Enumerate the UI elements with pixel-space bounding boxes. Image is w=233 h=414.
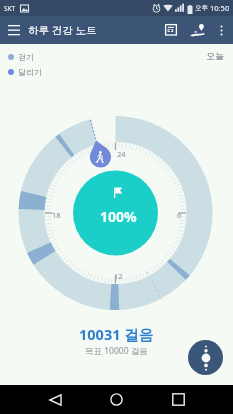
button[interactable]: Actions — [188, 340, 223, 375]
button[interactable]: 오늘 — [206, 50, 224, 61]
staticText: 10031 걸음 — [79, 324, 154, 344]
button[interactable]: 달리기 — [8, 67, 42, 77]
staticText: 걷기 — [18, 52, 34, 62]
staticText: 100% — [100, 207, 137, 226]
button[interactable]: Calendar — [158, 17, 184, 43]
button[interactable]: Menu — [0, 16, 28, 44]
button[interactable]: Home — [96, 385, 136, 414]
staticText: 10:50 — [210, 3, 230, 13]
staticText: 6 — [177, 210, 182, 220]
button[interactable]: More options — [210, 19, 232, 41]
button[interactable]: Location — [184, 17, 210, 43]
staticText: 하루 건강 노트 — [28, 23, 97, 37]
staticText: SKT — [4, 4, 16, 13]
staticText: 18 — [52, 210, 61, 220]
staticText: 오후 — [195, 4, 208, 12]
button[interactable]: 걷기 — [8, 52, 34, 62]
staticText: 달리기 — [18, 67, 42, 77]
button[interactable]: Recents — [158, 385, 198, 414]
staticText: 24 — [117, 149, 126, 159]
button[interactable]: Back — [35, 385, 75, 414]
staticText: 목표 10000 걸음 — [85, 345, 148, 357]
staticText: 12 — [114, 271, 123, 281]
